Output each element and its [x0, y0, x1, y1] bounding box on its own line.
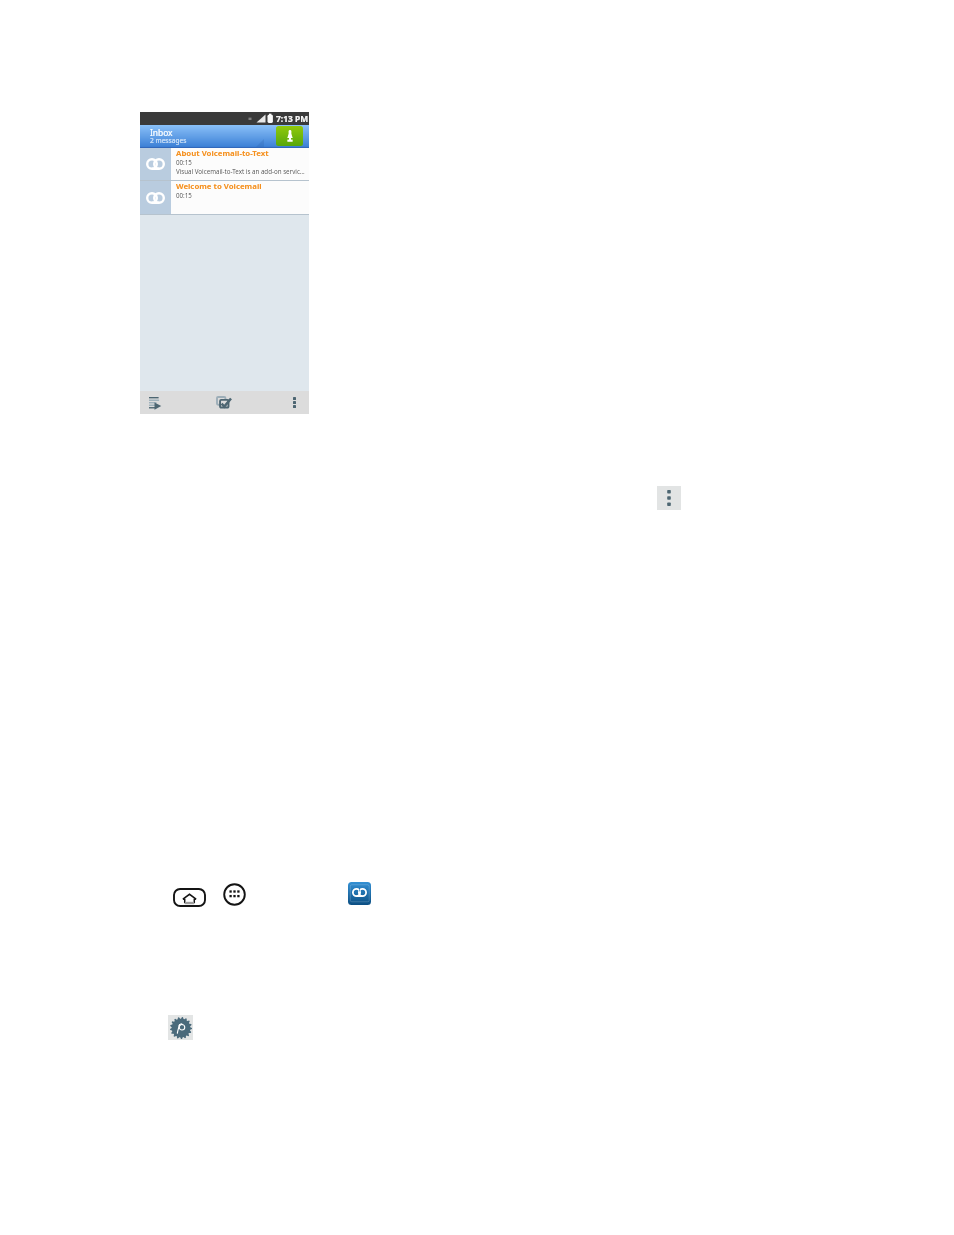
staticText: 2 messages — [150, 136, 187, 145]
staticText: Inbox — [150, 127, 173, 138]
button[interactable]: Personalize — [168, 1015, 193, 1040]
staticText: 00:15 — [176, 158, 192, 166]
button[interactable]: Home — [173, 888, 206, 907]
staticText: 7:13 PM — [276, 113, 309, 124]
button[interactable]: Record voicemail — [276, 126, 303, 146]
button[interactable]: More options — [268, 391, 309, 414]
staticText: Welcome to Voicemail — [176, 181, 262, 192]
button[interactable]: Apps — [223, 883, 246, 906]
staticText: Visual Voicemail-to-Text is an add-on se… — [176, 167, 305, 175]
button[interactable]: Welcome to Voicemail — [140, 181, 309, 214]
button[interactable]: About Voicemail-to-Text — [140, 148, 309, 180]
staticText: 00:15 — [176, 191, 192, 199]
button[interactable]: Select messages — [199, 391, 249, 414]
button[interactable]: Play all — [140, 391, 190, 414]
button[interactable]: Voicemail app — [348, 882, 371, 905]
staticText: About Voicemail-to-Text — [176, 148, 269, 159]
button[interactable]: More options — [657, 486, 681, 510]
